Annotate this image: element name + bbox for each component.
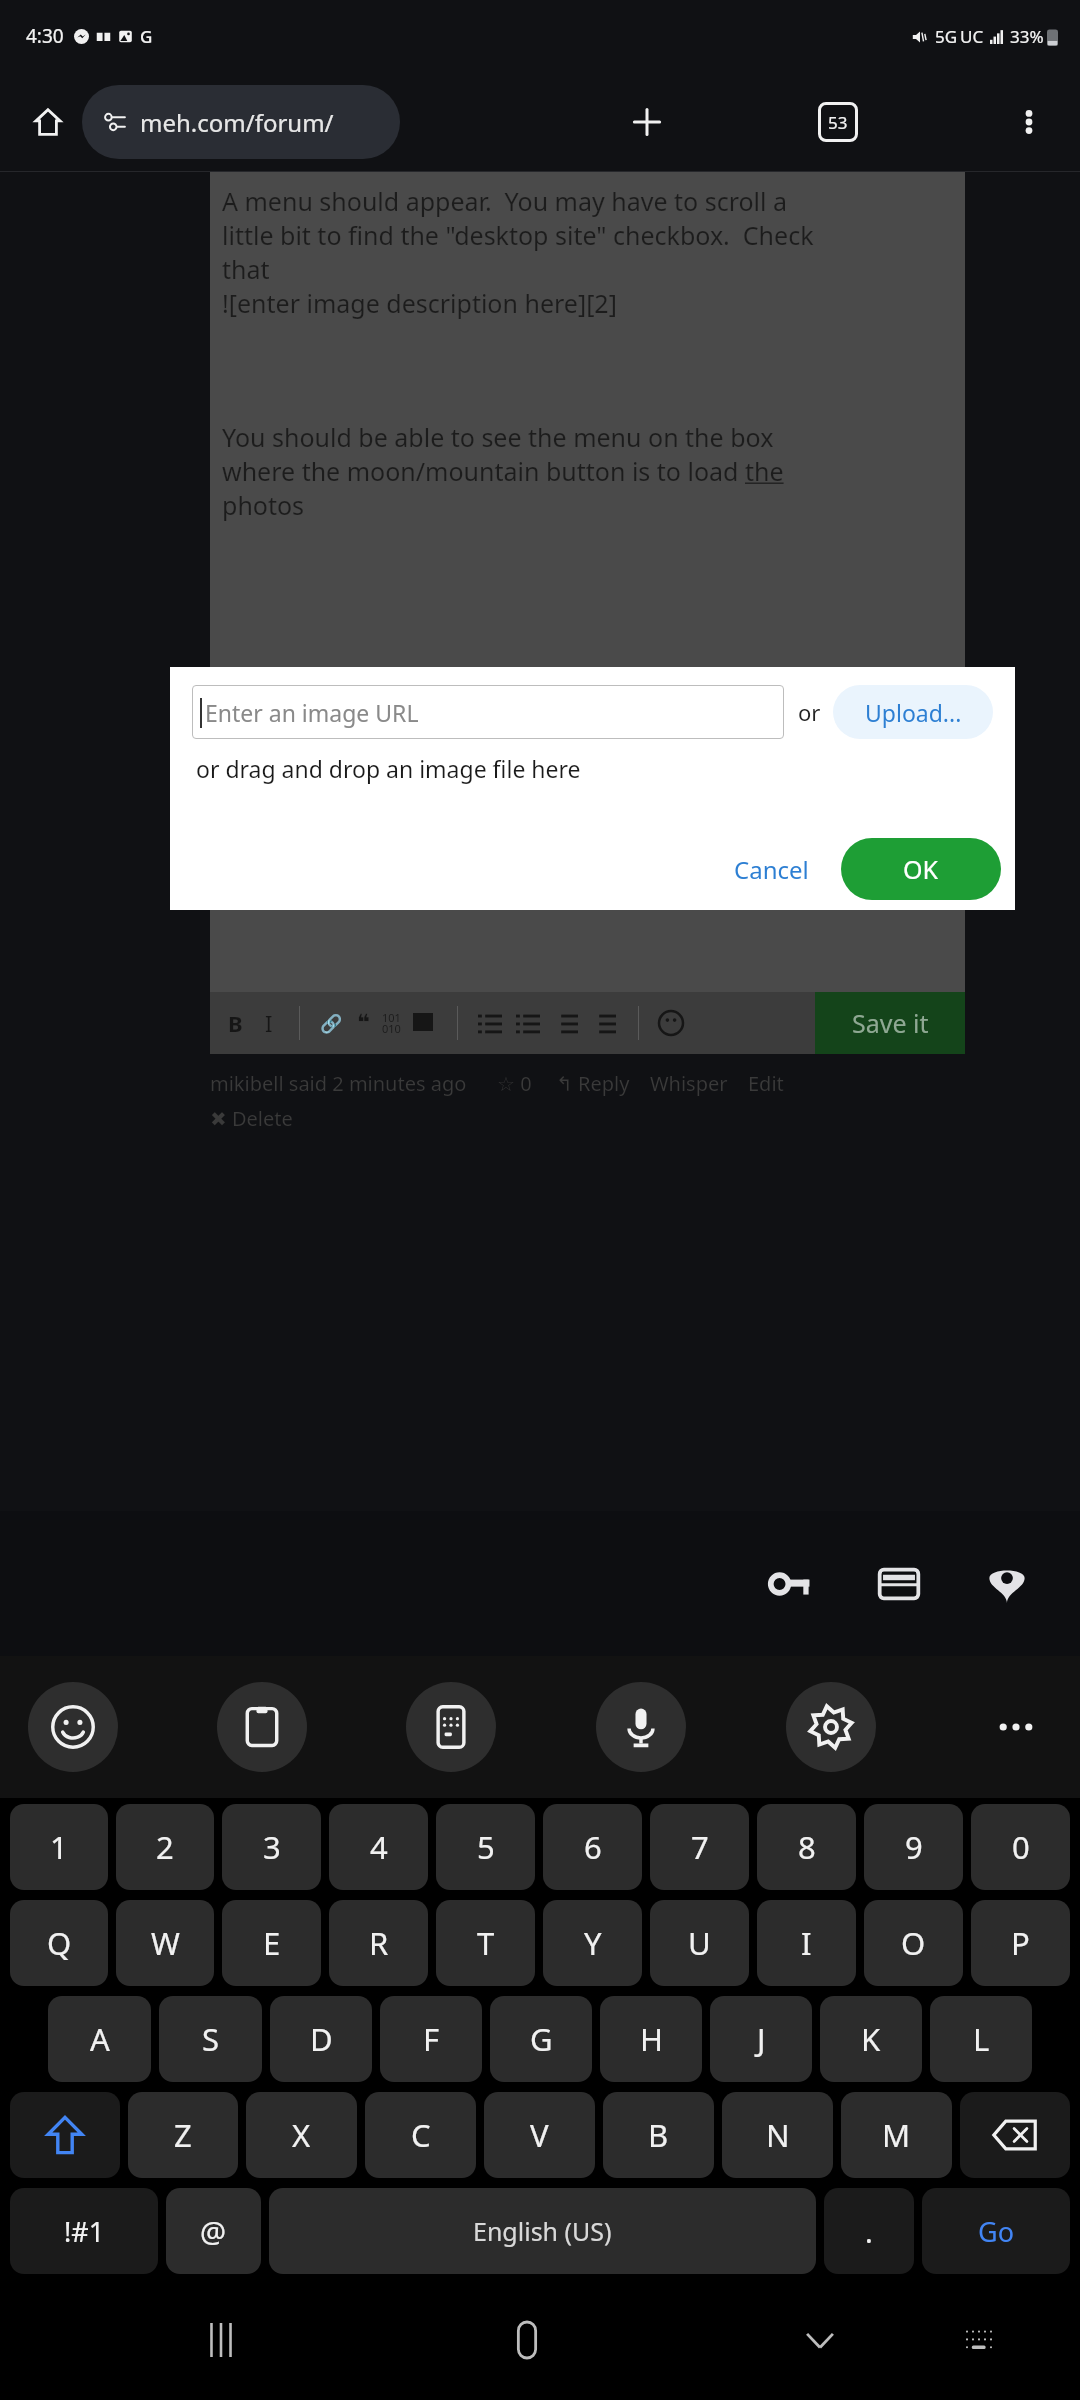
staticText: or — [798, 697, 821, 727]
button[interactable]: Settings — [786, 1682, 876, 1772]
button[interactable]: 9 — [864, 1804, 963, 1890]
button[interactable]: Enter an image URL — [192, 685, 784, 739]
button[interactable]: !#1 — [10, 2188, 158, 2274]
staticText: Save it — [852, 1006, 929, 1040]
staticText: ✖ Delete — [210, 1105, 293, 1132]
button[interactable]: 1 — [10, 1804, 108, 1890]
button[interactable]: Q — [10, 1900, 108, 1986]
button[interactable]: X — [246, 2092, 357, 2178]
staticText: 33% — [1010, 25, 1044, 48]
button[interactable]: Backspace — [960, 2092, 1070, 2178]
button[interactable]: B — [603, 2092, 714, 2178]
button[interactable]: H — [600, 1996, 702, 2082]
button[interactable]: V — [484, 2092, 595, 2178]
button[interactable]: Cancel — [716, 843, 827, 896]
button[interactable]: K — [820, 1996, 922, 2082]
button[interactable]: Tabs: 53 — [807, 91, 869, 153]
button[interactable]: OK — [841, 838, 1001, 900]
button[interactable]: @ — [166, 2188, 261, 2274]
button[interactable]: Y — [543, 1900, 642, 1986]
staticText: UC — [960, 25, 984, 48]
button[interactable]: Text editing — [406, 1682, 496, 1772]
staticText: P — [1011, 1922, 1030, 1964]
button[interactable]: A — [48, 1996, 151, 2082]
staticText: 8 — [798, 1826, 816, 1868]
button[interactable]: U — [650, 1900, 749, 1986]
button[interactable]: English (US) — [269, 2188, 816, 2274]
staticText: ☆ 0 — [497, 1070, 532, 1097]
button[interactable]: I — [757, 1900, 856, 1986]
staticText: . — [865, 2212, 873, 2251]
staticText: V — [530, 2114, 549, 2156]
button[interactable]: Upload... — [833, 685, 993, 739]
button[interactable]: Change keyboard — [939, 2300, 1019, 2380]
staticText: Upload... — [865, 697, 962, 728]
button[interactable]: More — [976, 1687, 1056, 1767]
staticText: X — [292, 2114, 311, 2156]
button[interactable]: New tab — [616, 91, 678, 153]
staticText: 🔗 — [320, 1013, 343, 1034]
button[interactable]: Shift — [10, 2092, 120, 2178]
button[interactable]: 5 — [436, 1804, 535, 1890]
staticText: C — [411, 2114, 431, 2156]
staticText: K — [861, 2018, 881, 2060]
button[interactable]: D — [270, 1996, 372, 2082]
staticText: H — [640, 2018, 663, 2060]
button[interactable]: N — [722, 2092, 833, 2178]
staticText: F — [423, 2018, 440, 2060]
staticText: J — [757, 2018, 766, 2060]
staticText: You should be able to see the menu on th… — [222, 420, 774, 454]
button[interactable]: Recent apps — [176, 2295, 266, 2385]
staticText: Enter an image URL — [205, 697, 419, 728]
button[interactable]: Payment methods — [860, 1545, 938, 1623]
button[interactable]: Addresses — [968, 1545, 1046, 1623]
button[interactable]: J — [710, 1996, 812, 2082]
staticText: 4:30 — [26, 23, 64, 49]
button[interactable]: C — [365, 2092, 476, 2178]
button[interactable]: Emoji — [28, 1682, 118, 1772]
staticText: Cancel — [734, 853, 809, 886]
button[interactable]: Go — [922, 2188, 1070, 2274]
button[interactable]: P — [971, 1900, 1070, 1986]
button[interactable]: E — [222, 1900, 321, 1986]
button[interactable]: 6 — [543, 1804, 642, 1890]
button[interactable]: T — [436, 1900, 535, 1986]
button[interactable]: 7 — [650, 1804, 749, 1890]
staticText: L — [973, 2018, 990, 2060]
button[interactable]: O — [864, 1900, 963, 1986]
button[interactable]: More options — [998, 91, 1060, 153]
button[interactable]: G — [490, 1996, 592, 2082]
staticText: 5G — [935, 25, 958, 48]
staticText: G — [530, 2018, 553, 2060]
staticText: B — [228, 1008, 243, 1038]
button[interactable]: M — [841, 2092, 952, 2178]
button[interactable]: 0 — [971, 1804, 1070, 1890]
button[interactable]: Home — [20, 94, 76, 150]
button[interactable]: Clipboard — [217, 1682, 307, 1772]
staticText: N — [766, 2114, 790, 2156]
button[interactable]: 4 — [329, 1804, 428, 1890]
button[interactable]: Hide keyboard — [775, 2295, 865, 2385]
button[interactable]: L — [930, 1996, 1032, 2082]
staticText: A menu should appear. You may have to sc… — [222, 184, 788, 218]
button[interactable]: 8 — [757, 1804, 856, 1890]
button[interactable]: Z — [128, 2092, 238, 2178]
staticText: D — [310, 2018, 333, 2060]
button[interactable]: Passwords — [752, 1545, 830, 1623]
button[interactable]: 2 — [116, 1804, 214, 1890]
button[interactable]: W — [116, 1900, 214, 1986]
button[interactable]: Home — [482, 2295, 572, 2385]
button[interactable]: S — [159, 1996, 262, 2082]
button[interactable]: R — [329, 1900, 428, 1986]
staticText: 7 — [691, 1826, 709, 1868]
button[interactable]: Save it — [815, 992, 965, 1054]
staticText: 5 — [477, 1826, 495, 1868]
button[interactable]: . — [824, 2188, 914, 2274]
button[interactable]: meh.com/forum/ — [82, 85, 400, 159]
button[interactable]: 3 — [222, 1804, 321, 1890]
staticText: OK — [903, 852, 939, 886]
button[interactable]: Voice input — [596, 1682, 686, 1772]
staticText: photos — [222, 488, 305, 522]
button[interactable]: F — [380, 1996, 482, 2082]
